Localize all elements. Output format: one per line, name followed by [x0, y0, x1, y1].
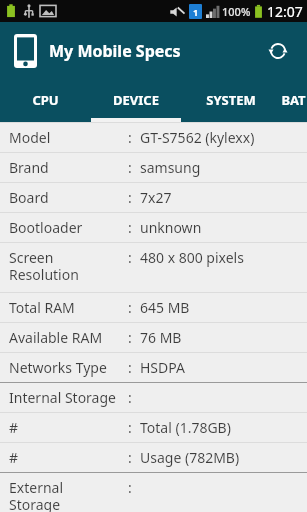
staticText: Available RAM: [9, 328, 103, 347]
staticText: #: [9, 448, 19, 467]
staticText: Board: [9, 188, 49, 207]
button[interactable]: BAT: [279, 80, 307, 122]
button[interactable]: #: [0, 443, 307, 472]
staticText: :: [128, 478, 132, 497]
staticText: #: [9, 418, 19, 437]
staticText: :: [128, 358, 132, 377]
button[interactable]: Networks Type: [0, 353, 307, 382]
staticText: Bootloader: [9, 218, 83, 237]
button[interactable]: Available RAM: [0, 323, 307, 352]
button[interactable]: Screen Resolution: [0, 243, 307, 292]
staticText: samsung: [140, 158, 201, 177]
staticText: 7x27: [140, 188, 172, 207]
staticText: Brand: [9, 158, 49, 177]
staticText: HSDPA: [140, 358, 185, 377]
staticText: :: [128, 328, 132, 347]
button[interactable]: CPU: [0, 80, 90, 122]
staticText: Networks Type: [9, 358, 107, 377]
staticText: 1: [193, 6, 199, 18]
staticText: BAT: [281, 91, 306, 109]
staticText: :: [128, 188, 132, 207]
staticText: 645 MB: [140, 298, 190, 317]
button[interactable]: Refresh: [261, 34, 295, 68]
staticText: unknown: [140, 218, 202, 237]
button[interactable]: Board: [0, 183, 307, 212]
staticText: 12:07: [267, 2, 303, 21]
staticText: :: [128, 128, 132, 147]
staticText: :: [128, 218, 132, 237]
staticText: GT-S7562 (kylexx): [140, 128, 255, 147]
button[interactable]: Brand: [0, 153, 307, 182]
staticText: 480 x 800 pixels: [140, 248, 244, 267]
button[interactable]: Bootloader: [0, 213, 307, 242]
staticText: External Storage: [9, 478, 64, 512]
button[interactable]: SYSTEM: [182, 80, 279, 122]
staticText: My Mobile Specs: [49, 40, 181, 62]
staticText: Screen Resolution: [9, 248, 79, 284]
staticText: :: [128, 298, 132, 317]
staticText: SYSTEM: [206, 91, 256, 109]
staticText: DEVICE: [113, 91, 159, 109]
staticText: CPU: [32, 91, 59, 109]
staticText: 100%: [222, 4, 251, 19]
staticText: :: [128, 418, 132, 437]
staticText: Internal Storage: [9, 388, 116, 407]
staticText: Total RAM: [9, 298, 75, 317]
button[interactable]: #: [0, 413, 307, 442]
staticText: :: [128, 248, 132, 267]
button[interactable]: Model: [0, 123, 307, 152]
staticText: Model: [9, 128, 51, 147]
button[interactable]: DEVICE: [90, 80, 182, 122]
button[interactable]: Total RAM: [0, 293, 307, 322]
button[interactable]: Internal Storage: [0, 383, 307, 412]
staticText: :: [128, 158, 132, 177]
button[interactable]: External Storage: [0, 473, 307, 512]
staticText: :: [128, 388, 132, 407]
staticText: 76 MB: [140, 328, 182, 347]
staticText: Usage (782MB): [140, 448, 240, 467]
staticText: :: [128, 448, 132, 467]
staticText: Total (1.78GB): [140, 418, 231, 437]
